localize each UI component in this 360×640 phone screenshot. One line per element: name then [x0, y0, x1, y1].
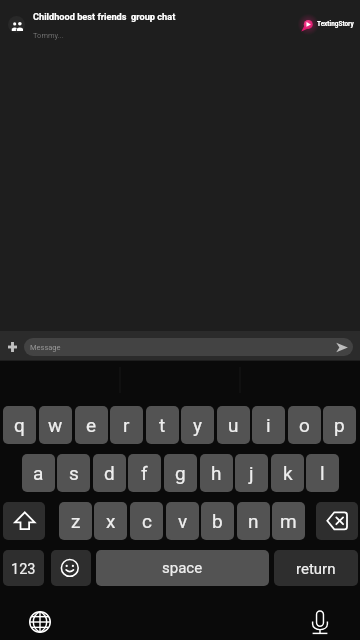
staticText: TextingStory	[317, 20, 354, 28]
button[interactable]: c	[130, 502, 163, 540]
button[interactable]: e	[75, 406, 108, 444]
button[interactable]: i	[252, 406, 285, 444]
staticText: h	[211, 462, 222, 484]
staticText: space	[162, 559, 203, 577]
button[interactable]: o	[288, 406, 321, 444]
staticText: Childhood best friends group chat	[33, 11, 176, 22]
button[interactable]: v	[166, 502, 199, 540]
button[interactable]: Group avatar	[8, 16, 25, 33]
button[interactable]: t	[146, 406, 179, 444]
staticText: a	[33, 462, 44, 484]
staticText: t	[159, 414, 166, 436]
button[interactable]: Send	[334, 340, 349, 355]
staticText: y	[193, 414, 202, 436]
staticText: o	[299, 414, 310, 436]
staticText: return	[296, 560, 336, 578]
button[interactable]: Message	[24, 338, 353, 356]
button[interactable]: a	[22, 454, 55, 492]
staticText: Message	[30, 343, 61, 352]
button[interactable]: z	[59, 502, 92, 540]
staticText: v	[178, 510, 188, 532]
staticText: Tommy...	[33, 31, 64, 40]
button[interactable]: g	[164, 454, 197, 492]
button[interactable]: f	[128, 454, 161, 492]
staticText: j	[249, 462, 254, 484]
button[interactable]: Backspace	[316, 502, 358, 540]
button[interactable]: m	[272, 502, 305, 540]
button[interactable]: Voice input	[306, 608, 334, 636]
staticText: i	[266, 414, 271, 436]
button[interactable]: Change keyboard language	[26, 608, 54, 636]
staticText: c	[142, 510, 152, 532]
button[interactable]: b	[201, 502, 234, 540]
button[interactable]: j	[235, 454, 268, 492]
staticText: l	[320, 462, 325, 484]
button[interactable]: x	[94, 502, 127, 540]
staticText: q	[14, 414, 25, 436]
button[interactable]: 123	[3, 550, 44, 586]
staticText: f	[141, 462, 148, 484]
button[interactable]: Emoji	[51, 550, 91, 586]
button[interactable]: Add attachment	[3, 337, 22, 356]
button[interactable]: h	[200, 454, 233, 492]
staticText: g	[175, 462, 186, 484]
staticText: b	[212, 510, 223, 532]
staticText: e	[86, 414, 97, 436]
staticText: k	[283, 462, 293, 484]
button[interactable]: u	[217, 406, 250, 444]
staticText: w	[48, 414, 63, 436]
button[interactable]: q	[3, 406, 36, 444]
staticText: r	[123, 414, 130, 436]
button[interactable]: n	[237, 502, 270, 540]
staticText: z	[71, 510, 81, 532]
staticText: m	[280, 510, 297, 532]
staticText: x	[106, 510, 116, 532]
staticText: 123	[11, 561, 36, 578]
button[interactable]: p	[323, 406, 356, 444]
button[interactable]: d	[93, 454, 126, 492]
button[interactable]: s	[57, 454, 90, 492]
button[interactable]: l	[306, 454, 339, 492]
staticText: s	[69, 462, 79, 484]
button[interactable]: y	[181, 406, 214, 444]
staticText: u	[228, 414, 239, 436]
button[interactable]: return	[274, 550, 358, 586]
button[interactable]: r	[110, 406, 143, 444]
staticText: p	[334, 414, 345, 436]
staticText: n	[248, 510, 259, 532]
button[interactable]: space	[96, 550, 269, 586]
button[interactable]: w	[39, 406, 72, 444]
button[interactable]: Shift	[3, 502, 45, 540]
staticText: d	[104, 462, 115, 484]
button[interactable]: k	[271, 454, 304, 492]
